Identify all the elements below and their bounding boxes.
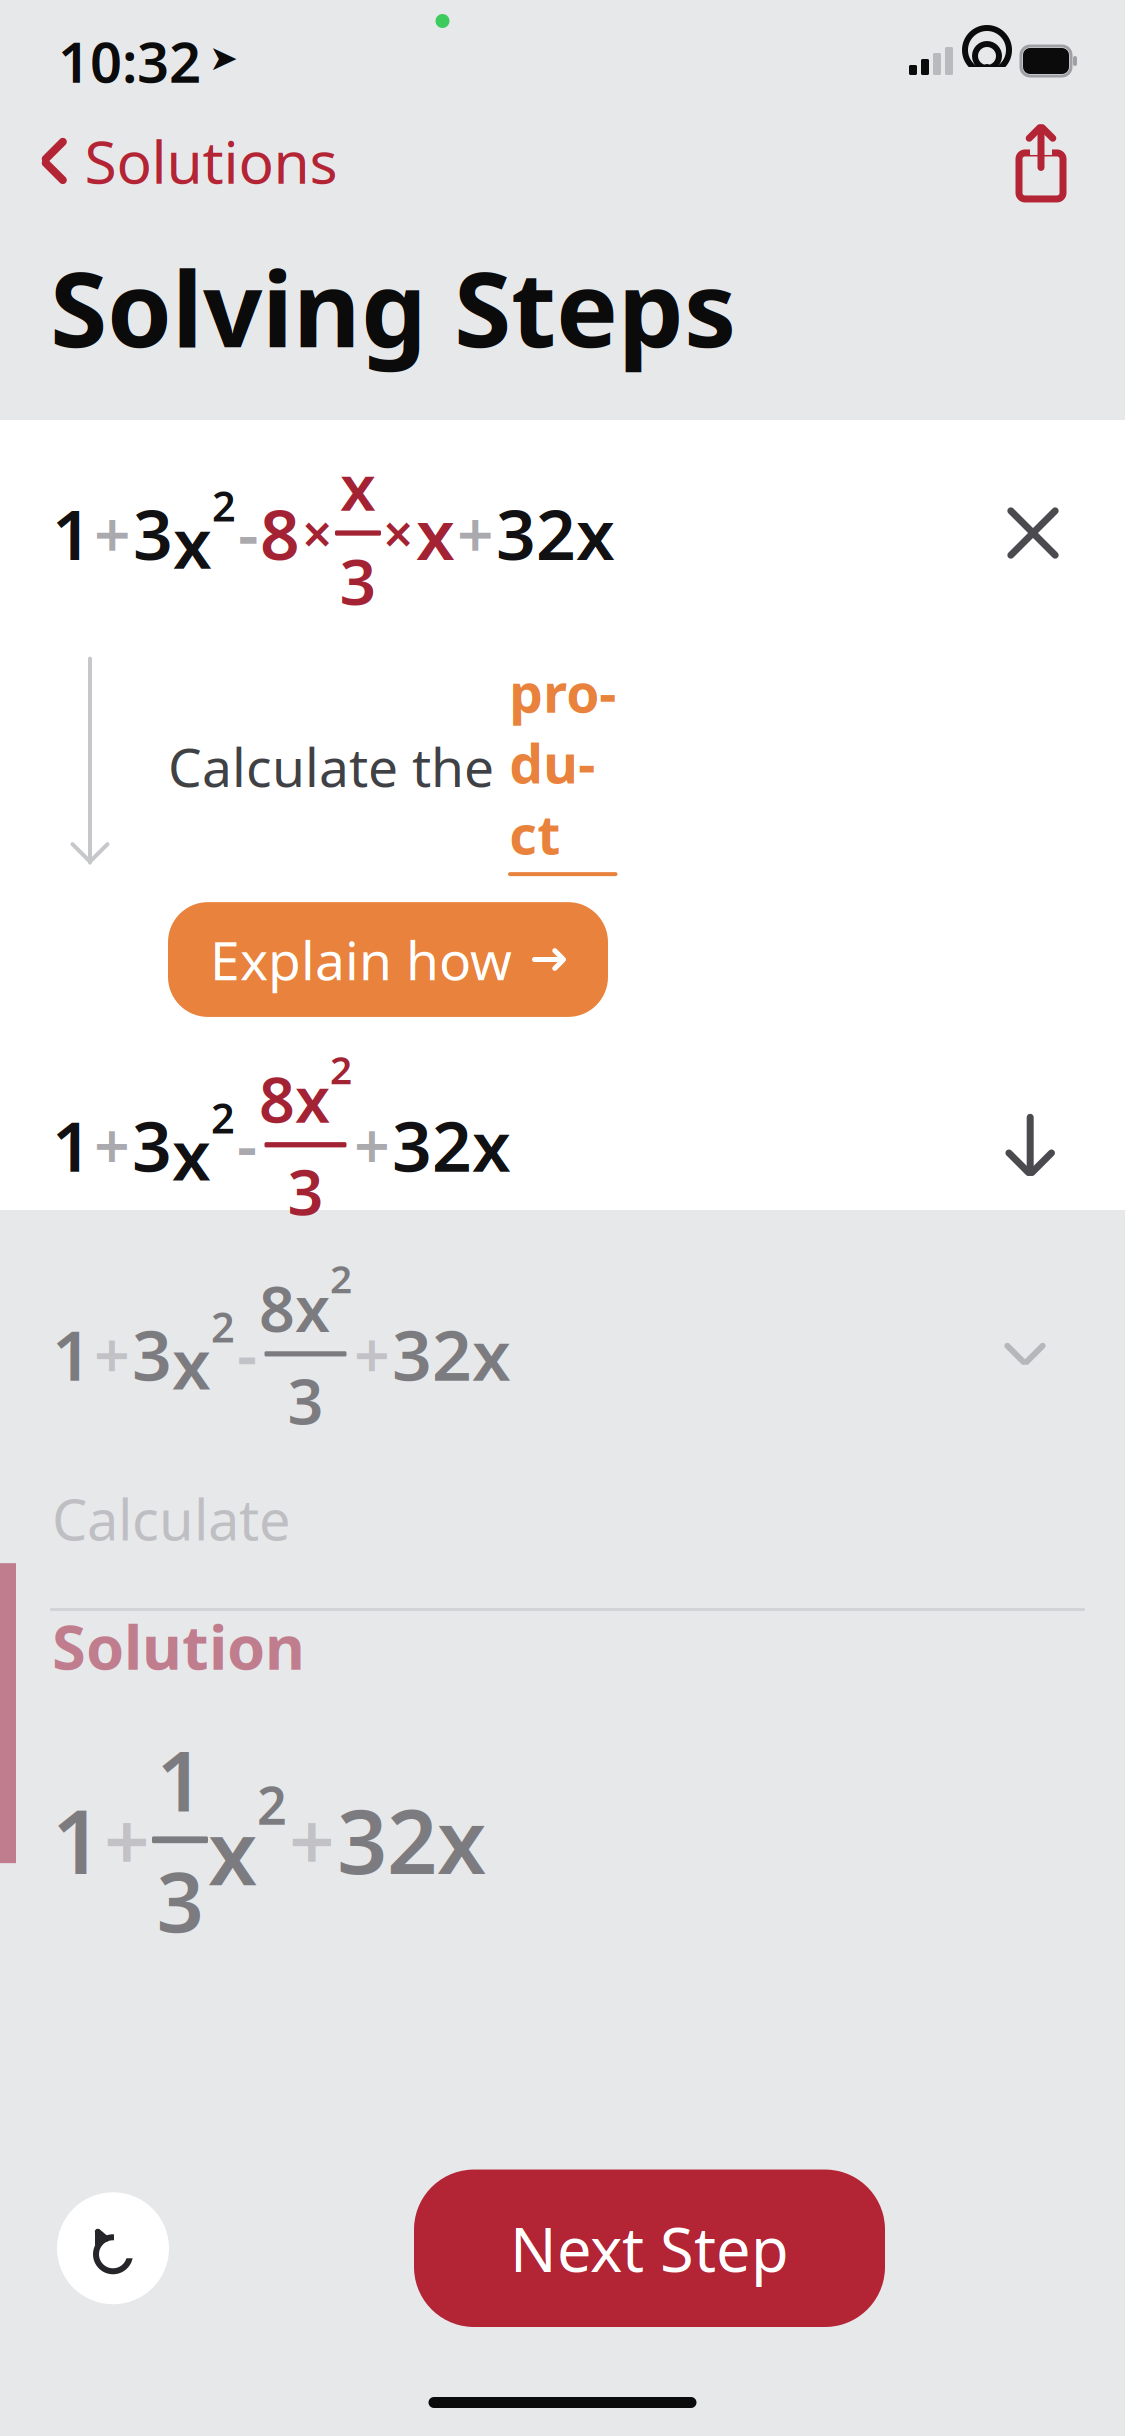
staticText: x [576,487,615,579]
staticText: 2 [212,478,236,533]
staticText: Explain how [210,924,512,995]
staticText: 8x [259,1266,330,1349]
staticText: x [172,1317,211,1409]
staticText: 2 [330,1043,352,1095]
staticText: 3 [133,487,173,579]
button[interactable]: Solutions [30,110,347,212]
staticText: 32 [392,1099,472,1191]
staticText: 3 [287,1358,323,1442]
staticText: Solutions [84,122,337,200]
button[interactable]: Scroll down [987,1096,1073,1194]
staticText: 2 [211,1090,235,1145]
button[interactable]: Next Step [414,2170,885,2327]
staticText: 3 [339,538,376,623]
staticText: Calculate the [168,731,508,802]
staticText: 2 [211,1299,235,1354]
staticText: 32 [496,487,576,579]
button[interactable]: Undo [48,2183,178,2313]
staticText: + [94,490,131,575]
staticText: - [238,490,258,575]
staticText: + [94,1103,130,1186]
staticText: x [340,443,376,528]
staticText: 2 [257,1770,287,1839]
staticText: x [472,1308,511,1400]
staticText: product [509,657,616,869]
staticText: 3 [132,1099,172,1191]
staticText: 32 [392,1308,472,1400]
staticText: 1 [52,1308,92,1400]
staticText: Next Step [510,2208,789,2289]
staticText: + [104,1787,150,1893]
staticText: 3 [287,1149,323,1233]
staticText: 2 [330,1253,352,1304]
staticText: 8x [259,1057,330,1140]
staticText: × [302,498,333,568]
staticText: + [354,1312,390,1395]
staticText: 3 [156,1845,203,1955]
staticText: + [94,1312,130,1395]
staticText: 1 [52,487,92,579]
staticText: x [472,1099,511,1191]
staticText: x [173,496,212,588]
staticText: Solution [52,1605,305,1687]
staticText: 1 [52,1099,92,1191]
staticText: ➤ [209,38,238,78]
button[interactable]: Close [989,489,1077,577]
button[interactable]: Expand step [977,1318,1073,1390]
button[interactable]: Share [1001,121,1081,201]
staticText: 32 [337,1781,437,1898]
staticText: x [437,1781,486,1898]
staticText: Calculate [52,1482,291,1556]
staticText: - [237,1103,257,1186]
button[interactable]: Explain how [168,902,608,1017]
staticText: 3 [132,1308,172,1400]
staticText: 1 [52,1781,102,1898]
staticText: + [457,490,494,575]
staticText: 10:32 [58,24,201,98]
staticText: + [354,1103,390,1186]
staticText: x [172,1108,211,1200]
staticText: 8 [260,487,300,579]
staticText: x [416,487,455,579]
staticText: x [208,1793,257,1909]
staticText: 1 [156,1725,203,1834]
staticText: + [289,1787,335,1893]
staticText: × [383,498,414,568]
staticText: Solving Steps [50,238,736,376]
staticText: - [237,1312,257,1395]
